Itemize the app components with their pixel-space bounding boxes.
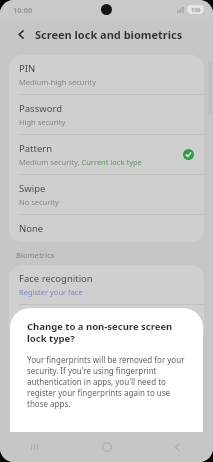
button[interactable]: Fingerprints: [9, 305, 204, 344]
button[interactable]: Cancel: [10, 426, 106, 454]
button[interactable]: Pattern: [9, 135, 204, 174]
staticText: None: [19, 222, 44, 235]
staticText: Change to a non-secure screen lock type?: [27, 320, 186, 345]
button[interactable]: None: [9, 215, 204, 242]
button[interactable]: Password: [9, 95, 204, 134]
staticText: Fingerprints: [19, 312, 74, 325]
button[interactable]: Back: [142, 432, 213, 462]
staticText: No security: [19, 197, 59, 207]
staticText: Swipe: [19, 182, 46, 195]
button[interactable]: Back: [13, 26, 29, 42]
button[interactable]: Swipe: [9, 175, 204, 214]
staticText: Register your face: [19, 287, 83, 297]
staticText: Your fingerprints will be removed for yo…: [27, 354, 186, 409]
staticText: PIN: [19, 62, 36, 75]
button[interactable]: Remove data: [107, 426, 203, 454]
staticText: Password: [19, 102, 62, 115]
staticText: High security: [19, 117, 66, 127]
button[interactable]: PIN: [9, 55, 204, 94]
button[interactable]: Recent apps: [0, 432, 71, 462]
staticText: 10:00: [13, 5, 33, 15]
staticText: Medium-high security: [19, 77, 97, 87]
button[interactable]: Face recognition: [9, 265, 204, 304]
staticText: Face recognition: [19, 272, 93, 285]
staticText: Added: [19, 327, 42, 337]
staticText: 100: [191, 6, 201, 13]
staticText: Screen lock and biometrics: [35, 27, 183, 42]
staticText: Biometrics: [16, 250, 55, 260]
staticText: Medium security, Current lock type: [19, 157, 142, 167]
staticText: Pattern: [19, 142, 53, 155]
